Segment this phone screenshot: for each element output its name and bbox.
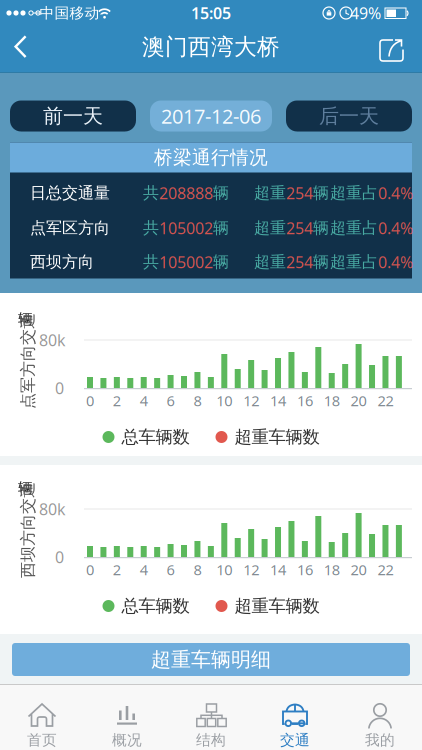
- staticText: 辆: [313, 218, 329, 238]
- staticText: 105002: [159, 217, 213, 239]
- staticText: 12: [243, 560, 259, 579]
- staticText: 结构: [196, 731, 226, 749]
- staticText: 超重车辆数: [234, 426, 319, 448]
- staticText: 概况: [112, 731, 142, 749]
- staticText: 10: [216, 560, 232, 579]
- staticText: 首页: [27, 731, 57, 749]
- staticText: 超重: [254, 218, 286, 238]
- staticText: 辆: [213, 252, 229, 272]
- button[interactable]: 交通: [253, 704, 337, 748]
- staticText: 16: [297, 391, 313, 410]
- staticText: 辆: [213, 183, 229, 203]
- staticText: 点军方向交通: [0, 351, 76, 371]
- staticText: 18: [324, 391, 340, 410]
- button[interactable]: 后一天: [286, 100, 412, 131]
- staticText: 0.4%: [378, 217, 413, 239]
- staticText: 6: [167, 560, 175, 579]
- staticText: 辆: [313, 183, 329, 203]
- staticText: 80k: [39, 329, 66, 351]
- staticText: 20: [351, 560, 367, 579]
- staticText: 日总交通量: [30, 183, 110, 203]
- button[interactable]: 前一天: [10, 100, 136, 131]
- staticText: 桥梁通行情况: [154, 146, 268, 169]
- staticText: 0.4%: [378, 182, 413, 204]
- staticText: 0: [86, 391, 94, 410]
- staticText: 105002: [159, 251, 213, 273]
- staticText: 辆: [18, 310, 33, 328]
- button[interactable]: 2017-12-06: [150, 100, 272, 131]
- staticText: 14: [270, 391, 286, 410]
- button[interactable]: 概况: [85, 704, 169, 748]
- staticText: 12: [243, 391, 259, 410]
- staticText: 2: [113, 391, 121, 410]
- staticText: 8: [193, 560, 201, 579]
- staticText: 澳门西湾大桥: [142, 33, 280, 61]
- staticText: 254: [286, 182, 313, 204]
- staticText: 中国移动: [39, 4, 99, 22]
- staticText: 0: [86, 560, 94, 579]
- staticText: 16: [297, 560, 313, 579]
- staticText: 18: [324, 560, 340, 579]
- staticText: 共: [143, 183, 159, 203]
- staticText: 超重: [254, 183, 286, 203]
- staticText: 208888: [159, 182, 213, 204]
- staticText: 8: [193, 391, 201, 410]
- staticText: 22: [377, 391, 393, 410]
- staticText: 辆: [313, 252, 329, 272]
- staticText: 15:05: [191, 2, 231, 24]
- staticText: 2: [113, 560, 121, 579]
- staticText: 0.4%: [378, 251, 413, 273]
- staticText: 超重车辆明细: [151, 647, 271, 672]
- button[interactable]: 我的: [338, 704, 422, 748]
- staticText: 20: [351, 391, 367, 410]
- staticText: 6: [167, 391, 175, 410]
- staticText: 辆: [213, 218, 229, 238]
- staticText: 0: [55, 546, 64, 568]
- staticText: 西坝方向: [30, 252, 94, 272]
- staticText: 前一天: [43, 104, 103, 128]
- staticText: 4: [140, 391, 148, 410]
- staticText: 共: [143, 252, 159, 272]
- button[interactable]: 超重车辆明细: [12, 643, 410, 676]
- staticText: 后一天: [319, 104, 379, 128]
- staticText: 4: [140, 560, 148, 579]
- staticText: 点军区方向: [30, 218, 110, 238]
- staticText: 80k: [39, 498, 66, 520]
- button[interactable]: 首页: [0, 704, 84, 748]
- button[interactable]: 返回: [12, 33, 40, 61]
- staticText: 254: [286, 251, 313, 273]
- button[interactable]: 分享: [378, 37, 406, 65]
- staticText: 超重占: [330, 183, 378, 203]
- staticText: 总车辆数: [121, 426, 189, 448]
- staticText: 14: [270, 560, 286, 579]
- staticText: 22: [377, 560, 393, 579]
- staticText: 超重占: [330, 218, 378, 238]
- staticText: 超重车辆数: [234, 595, 319, 617]
- staticText: 共: [143, 218, 159, 238]
- staticText: 我的: [365, 731, 395, 749]
- staticText: 254: [286, 217, 313, 239]
- staticText: 交通: [280, 731, 310, 749]
- staticText: 总车辆数: [121, 595, 189, 617]
- staticText: 超重: [254, 252, 286, 272]
- staticText: 西坝方向交通: [0, 520, 76, 540]
- staticText: 超重占: [330, 252, 378, 272]
- staticText: 辆: [18, 479, 33, 497]
- staticText: 49%: [350, 2, 381, 24]
- staticText: 0: [55, 377, 64, 399]
- staticText: 10: [216, 391, 232, 410]
- staticText: 2017-12-06: [161, 103, 261, 129]
- button[interactable]: 结构: [169, 704, 253, 748]
